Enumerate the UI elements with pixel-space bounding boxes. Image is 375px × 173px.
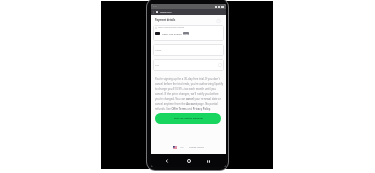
staticText: 9:41 bbox=[153, 5, 158, 8]
button[interactable]: Start my Spotify Premium bbox=[155, 113, 221, 124]
button[interactable]: Change country bbox=[189, 146, 204, 149]
staticText: Select saved payment method bbox=[158, 26, 185, 29]
button[interactable]: Select saved payment method bbox=[153, 25, 224, 41]
button[interactable]: CVV bbox=[153, 59, 224, 71]
staticText: Name bbox=[155, 49, 162, 52]
staticText: Payment details bbox=[155, 18, 176, 21]
staticText: spotify.com bbox=[160, 11, 172, 14]
other: Menu bbox=[152, 11, 155, 14]
button[interactable]: Name bbox=[153, 44, 224, 56]
button[interactable]: Home bbox=[184, 156, 194, 166]
staticText: You're signing up for a 30-day free tria… bbox=[155, 77, 224, 110]
staticText: USA bbox=[180, 146, 184, 149]
button[interactable]: Recent apps bbox=[203, 156, 213, 166]
button[interactable]: Back bbox=[162, 156, 172, 166]
staticText: Start my Spotify Premium bbox=[174, 117, 203, 120]
staticText: Debit Visa ending bbox=[162, 32, 182, 35]
staticText: 1234 bbox=[183, 32, 189, 35]
staticText: CVV bbox=[155, 64, 160, 67]
other: Secure payment bbox=[215, 17, 222, 24]
